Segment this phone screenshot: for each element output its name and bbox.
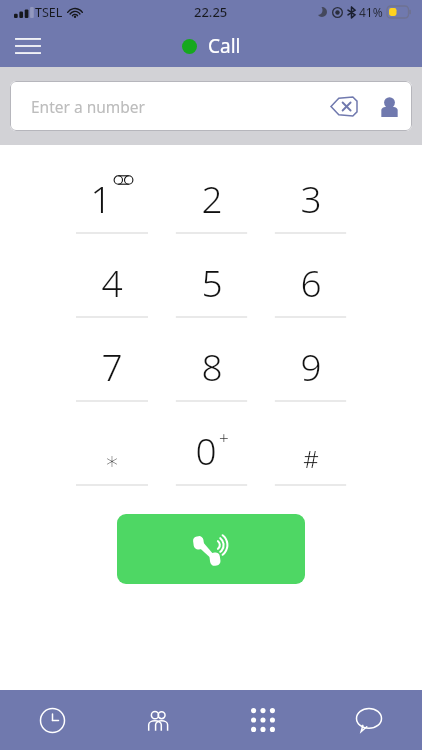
staticText: 6: [300, 257, 322, 307]
button[interactable]: Enter a number: [10, 81, 412, 131]
button[interactable]: Keypad: [210, 690, 316, 750]
button[interactable]: Menu: [8, 26, 48, 66]
staticText: 5: [201, 257, 223, 307]
staticText: 7: [101, 341, 123, 391]
button[interactable]: 2: [162, 173, 261, 234]
staticText: #: [303, 442, 319, 475]
button[interactable]: 6: [261, 257, 360, 318]
staticText: ∗: [104, 447, 120, 475]
button[interactable]: 3: [261, 173, 360, 234]
button[interactable]: Recents: [0, 690, 105, 750]
button[interactable]: ∗: [62, 425, 162, 486]
staticText: 2: [201, 173, 223, 223]
staticText: 0: [195, 425, 217, 475]
button[interactable]: 5: [162, 257, 261, 318]
staticText: 41%: [359, 4, 383, 20]
button[interactable]: 0: [162, 425, 261, 486]
button[interactable]: Messages: [316, 690, 422, 750]
button[interactable]: 8: [162, 341, 261, 402]
staticText: 4: [101, 257, 123, 307]
button[interactable]: Contacts: [366, 83, 412, 129]
staticText: +: [219, 426, 229, 449]
button[interactable]: 7: [62, 341, 162, 402]
staticText: Call: [208, 33, 241, 59]
staticText: Enter a number: [31, 96, 322, 117]
button[interactable]: 9: [261, 341, 360, 402]
button[interactable]: 4: [62, 257, 162, 318]
staticText: TSEL: [35, 4, 63, 21]
staticText: 8: [201, 341, 223, 391]
staticText: 3: [300, 173, 322, 223]
button[interactable]: Call: [117, 514, 305, 584]
staticText: 22.25: [194, 3, 228, 21]
button[interactable]: Contacts: [105, 690, 210, 750]
button[interactable]: #: [261, 425, 360, 486]
staticText: 1: [90, 173, 112, 223]
button[interactable]: 1: [62, 173, 162, 234]
staticText: 9: [300, 341, 322, 391]
button[interactable]: Backspace: [322, 84, 366, 128]
